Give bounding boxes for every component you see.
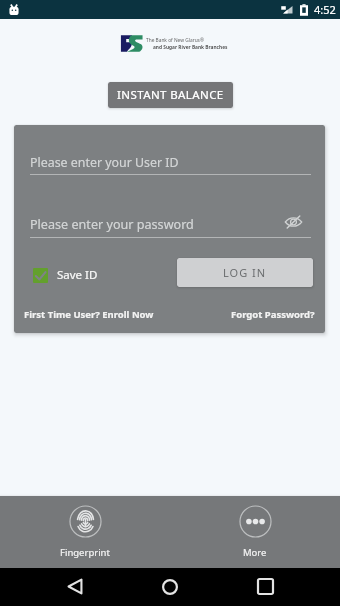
button[interactable]: Show password — [283, 212, 303, 232]
button[interactable]: Home — [153, 570, 186, 603]
staticText: Forgot Password? — [231, 308, 315, 321]
staticText: More — [243, 546, 267, 559]
staticText: Please enter your User ID — [30, 154, 179, 171]
staticText: INSTANT BALANCE — [117, 87, 224, 103]
staticText: The Bank of New Glarus® — [146, 37, 204, 44]
button[interactable]: Forgot Password? — [231, 308, 315, 321]
button[interactable]: LOG IN — [177, 258, 313, 287]
staticText: LOG IN — [223, 265, 267, 280]
button[interactable]: Recents — [249, 570, 282, 603]
button[interactable]: Fingerprint — [0, 496, 170, 568]
button[interactable]: Save ID — [31, 265, 100, 285]
button[interactable]: Back — [58, 570, 91, 603]
button[interactable]: INSTANT BALANCE — [108, 82, 233, 108]
staticText: 4:52 — [314, 2, 336, 17]
staticText: First Time User? Enroll Now — [24, 308, 154, 321]
staticText: Fingerprint — [60, 546, 110, 559]
staticText: Please enter your password — [30, 216, 194, 233]
button[interactable]: First Time User? Enroll Now — [24, 308, 154, 321]
button[interactable]: More — [170, 496, 340, 568]
staticText: and Sugar River Bank Branches — [153, 44, 228, 51]
staticText: Save ID — [57, 267, 98, 283]
